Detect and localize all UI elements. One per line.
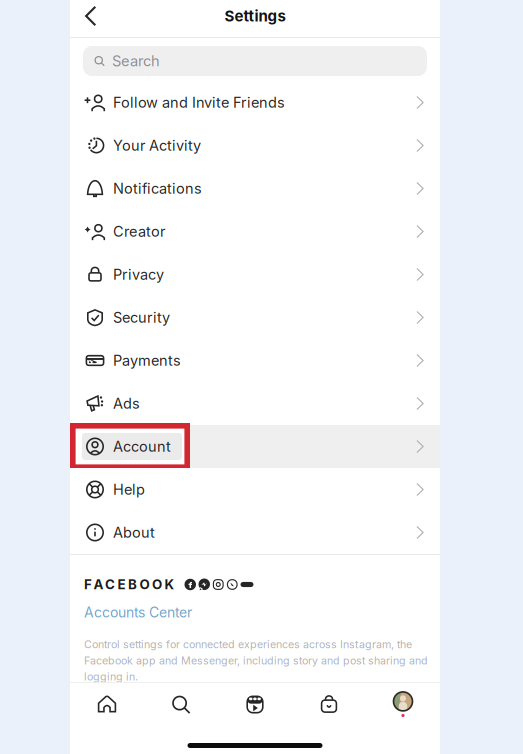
- button[interactable]: Notifications: [70, 167, 440, 210]
- button[interactable]: Help: [70, 468, 440, 511]
- button[interactable]: Accounts Center: [84, 592, 192, 619]
- staticText: Settings: [224, 7, 285, 25]
- staticText: Accounts Center: [84, 604, 192, 621]
- button[interactable]: Privacy: [70, 253, 440, 296]
- button[interactable]: About: [70, 511, 440, 554]
- staticText: Search: [112, 52, 160, 70]
- staticText: Privacy: [113, 266, 164, 283]
- button[interactable]: Ads: [70, 382, 440, 425]
- button[interactable]: Security: [70, 296, 440, 339]
- staticText: Follow and Invite Friends: [113, 94, 285, 111]
- button[interactable]: Back: [70, 0, 111, 32]
- button[interactable]: Your Activity: [70, 124, 440, 167]
- button[interactable]: Account: [70, 425, 440, 468]
- button[interactable]: Profile: [366, 683, 440, 726]
- staticText: Help: [113, 481, 145, 498]
- button[interactable]: Shop: [292, 683, 366, 726]
- staticText: Your Activity: [113, 137, 201, 154]
- button[interactable]: Search: [144, 683, 218, 726]
- staticText: Security: [113, 309, 170, 326]
- staticText: Control settings for connected experienc…: [84, 638, 428, 683]
- staticText: Creator: [113, 223, 165, 240]
- staticText: About: [113, 524, 155, 541]
- button[interactable]: Follow and Invite Friends: [70, 81, 440, 124]
- staticText: Notifications: [113, 180, 202, 197]
- button[interactable]: Reels: [218, 683, 292, 726]
- button[interactable]: Creator: [70, 210, 440, 253]
- staticText: Ads: [113, 395, 140, 412]
- staticText: Account: [113, 438, 171, 455]
- staticText: FACEBOOK: [84, 576, 174, 592]
- button[interactable]: Payments: [70, 339, 440, 382]
- staticText: Payments: [113, 352, 181, 369]
- button[interactable]: Home: [70, 683, 144, 726]
